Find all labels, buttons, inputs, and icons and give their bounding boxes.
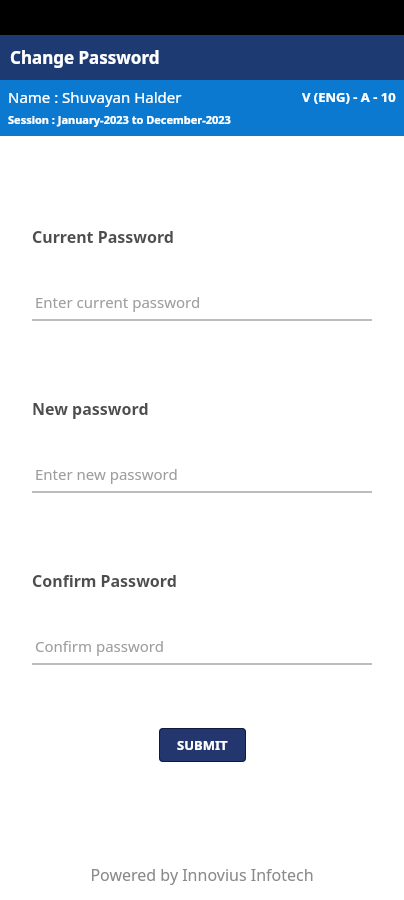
staticText: Confirm password [35, 636, 164, 656]
button[interactable]: Enter current password [32, 292, 372, 321]
staticText: Enter current password [35, 292, 201, 312]
button[interactable]: SUBMIT [159, 728, 246, 762]
staticText: Enter new password [35, 464, 178, 484]
button[interactable]: Enter new password [32, 464, 372, 493]
staticText: Current Password [32, 226, 174, 248]
staticText: Session : January-2023 to December-2023 [8, 112, 231, 127]
staticText: Name : Shuvayan Halder [8, 87, 182, 107]
staticText: Change Password [10, 46, 160, 69]
button[interactable]: Confirm password [32, 636, 372, 665]
staticText: Confirm Password [32, 570, 177, 592]
staticText: V (ENG) - A - 10 [302, 88, 396, 106]
staticText: SUBMIT [177, 736, 228, 754]
staticText: New password [32, 398, 149, 420]
staticText: Powered by Innovius Infotech [90, 864, 314, 886]
